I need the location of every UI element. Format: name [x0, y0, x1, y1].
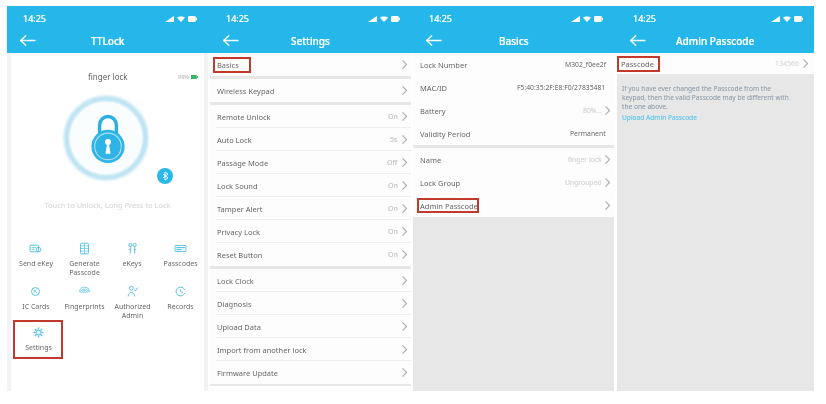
staticText: Validity Period [420, 129, 471, 139]
button[interactable]: Upload Admin Passcode [622, 113, 697, 122]
staticText: finger lock [88, 71, 128, 82]
staticText: Admin Passcode [676, 34, 755, 48]
button[interactable]: Remote Unlock [210, 105, 411, 128]
button[interactable]: Back [219, 29, 241, 51]
button[interactable]: Basics [210, 53, 411, 76]
staticText: Off [387, 158, 398, 168]
button[interactable]: Wireless Keypad [210, 79, 411, 102]
staticText: Lock Number [420, 60, 468, 70]
button[interactable]: Back [16, 29, 38, 51]
button[interactable]: Passage Mode [210, 151, 411, 174]
staticText: Passage Mode [217, 158, 269, 168]
staticText: On [388, 181, 398, 191]
button[interactable]: IC Cards [11, 283, 60, 312]
staticText: Touch to Unlock, Long Press to Lock [11, 200, 204, 210]
staticText: Records [167, 302, 194, 312]
button[interactable]: Battery [413, 99, 614, 122]
staticText: Wireless Keypad [217, 86, 275, 96]
button[interactable]: MAC/ID [413, 76, 614, 99]
button[interactable]: Reset Button [210, 243, 411, 266]
button[interactable]: Name [413, 148, 614, 171]
staticText: Upload Data [217, 322, 261, 332]
button[interactable]: Lock Sound [210, 174, 411, 197]
button[interactable]: Lock Clock [210, 269, 411, 292]
staticText: eKeys [122, 259, 142, 269]
staticText: Privacy Lock [217, 227, 261, 237]
staticText: 14:25 [226, 12, 250, 24]
button[interactable]: Generate Passcode [60, 240, 108, 277]
staticText: Basics [499, 34, 529, 48]
staticText: Send eKey [19, 259, 53, 269]
staticText: Passcodes [163, 259, 198, 269]
staticText: On [388, 250, 398, 260]
staticText: Lock Sound [217, 181, 258, 191]
staticText: Admin Passcode [420, 201, 478, 211]
staticText: Ungrouped [565, 178, 602, 187]
staticText: 14:25 [23, 12, 47, 24]
staticText: 5s [390, 135, 398, 145]
staticText: Passcode [621, 59, 654, 69]
button[interactable]: Lock Number [413, 53, 614, 76]
staticText: Settings [25, 343, 52, 353]
staticText: Import from another lock [217, 345, 307, 355]
staticText: 80%... [583, 106, 602, 115]
button[interactable]: Validity Period [413, 122, 614, 145]
staticText: 14:25 [429, 12, 453, 24]
staticText: If you have ever changed the Passcode fr… [622, 84, 792, 111]
button[interactable]: Back [626, 29, 648, 51]
button[interactable]: Settings [13, 324, 63, 359]
staticText: Lock Group [420, 178, 461, 188]
staticText: Firmware Update [217, 368, 279, 378]
staticText: finger lock [568, 155, 602, 164]
staticText: Battery [420, 106, 446, 116]
staticText: Tamper Alert [217, 204, 263, 214]
button[interactable]: Diagnosis [210, 292, 411, 315]
staticText: On [388, 227, 398, 237]
staticText: Generate Passcode [69, 259, 100, 277]
staticText: 14:25 [633, 12, 657, 24]
staticText: Authorized Admin [114, 302, 151, 320]
button[interactable]: Authorized Admin [108, 283, 156, 320]
button[interactable]: Back [422, 29, 444, 51]
button[interactable]: Passcode [617, 53, 814, 74]
staticText: Fingerprints [64, 302, 105, 312]
button[interactable]: Tamper Alert [210, 197, 411, 220]
button[interactable]: Import from another lock [210, 338, 411, 361]
staticText: Lock Clock [217, 276, 254, 286]
button[interactable]: Passcodes [156, 240, 204, 269]
button[interactable]: Auto Lock [210, 128, 411, 151]
staticText: On [388, 112, 398, 122]
button[interactable]: Records [156, 283, 204, 312]
button[interactable]: Upload Data [210, 315, 411, 338]
staticText: Auto Lock [217, 135, 252, 145]
staticText: 99% [178, 73, 189, 80]
staticText: M302_f0ee2f [565, 60, 606, 69]
button[interactable]: eKeys [108, 240, 156, 269]
staticText: MAC/ID [420, 83, 447, 93]
staticText: Permanent [570, 129, 606, 138]
button[interactable]: Admin Passcode [413, 194, 614, 217]
button[interactable]: Send eKey [11, 240, 60, 269]
staticText: Basics [217, 60, 239, 70]
staticText: On [388, 204, 398, 214]
staticText: TTLock [91, 34, 125, 48]
button[interactable]: Privacy Lock [210, 220, 411, 243]
staticText: Remote Unlock [217, 112, 271, 122]
staticText: 134566 [775, 59, 800, 69]
button[interactable]: Lock Group [413, 171, 614, 194]
staticText: IC Cards [22, 302, 50, 312]
button[interactable]: Fingerprints [60, 283, 108, 312]
staticText: Settings [291, 34, 330, 48]
button[interactable]: Bluetooth [157, 168, 173, 184]
staticText: F5:40:35:2F:E8:F0/27835481 [517, 83, 606, 92]
staticText: Reset Button [217, 250, 263, 260]
staticText: Diagnosis [217, 299, 252, 309]
button[interactable]: Firmware Update [210, 361, 411, 384]
staticText: Name [420, 155, 442, 165]
